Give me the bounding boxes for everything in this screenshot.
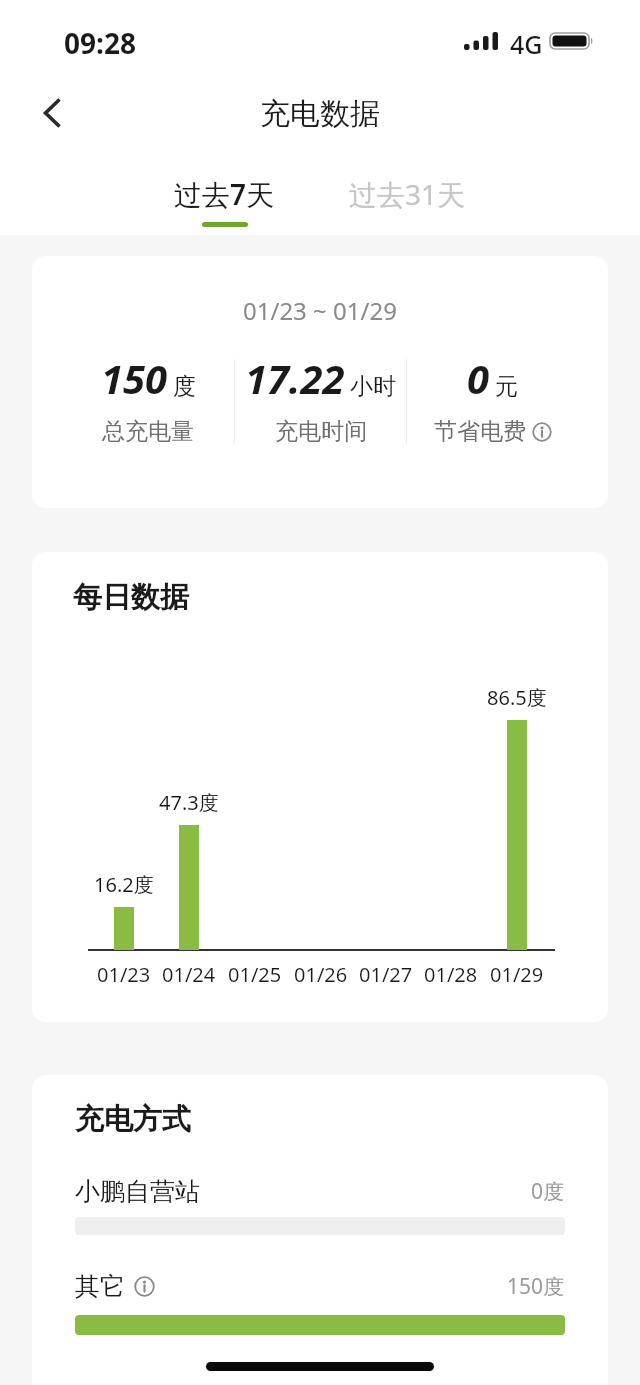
staticText: 总充电量 xyxy=(102,417,194,446)
staticText: 01/26 xyxy=(294,961,348,988)
staticText: 充电数据 xyxy=(260,95,380,133)
staticText: 每日数据 xyxy=(73,579,189,616)
button[interactable]: 过去7天 xyxy=(174,175,275,227)
staticText: 01/23 ~ 01/29 xyxy=(243,294,397,327)
staticText: 09:28 xyxy=(64,24,136,62)
staticText: 小时 xyxy=(350,372,396,401)
staticText: 其它 xyxy=(75,1271,125,1302)
button[interactable]: 过去31天 xyxy=(349,175,466,213)
staticText: 150度 xyxy=(507,1272,565,1301)
staticText: 01/29 xyxy=(490,961,544,988)
staticText: 充电时间 xyxy=(275,417,367,446)
staticText: 17.22 xyxy=(245,351,345,405)
staticText: 0 xyxy=(467,351,490,405)
staticText: 过去31天 xyxy=(349,175,466,213)
staticText: 86.5度 xyxy=(487,684,547,711)
staticText: 01/27 xyxy=(359,961,413,988)
staticText: 01/28 xyxy=(424,961,478,988)
button[interactable] xyxy=(532,422,552,442)
staticText: 01/23 xyxy=(97,961,151,988)
button[interactable] xyxy=(28,85,76,141)
staticText: 0度 xyxy=(531,1177,565,1206)
staticText: 150 xyxy=(101,351,168,405)
staticText: 4G xyxy=(510,27,543,61)
staticText: 01/24 xyxy=(162,961,216,988)
staticText: 01/25 xyxy=(228,961,282,988)
staticText: 元 xyxy=(495,372,518,401)
staticText: 度 xyxy=(173,372,196,401)
staticText: 过去7天 xyxy=(174,175,275,213)
staticText: 节省电费 xyxy=(434,417,526,446)
button[interactable] xyxy=(134,1276,155,1297)
staticText: 充电方式 xyxy=(75,1101,191,1138)
staticText: 16.2度 xyxy=(94,871,154,898)
staticText: 47.3度 xyxy=(159,789,219,816)
staticText: 小鹏自营站 xyxy=(75,1176,200,1207)
